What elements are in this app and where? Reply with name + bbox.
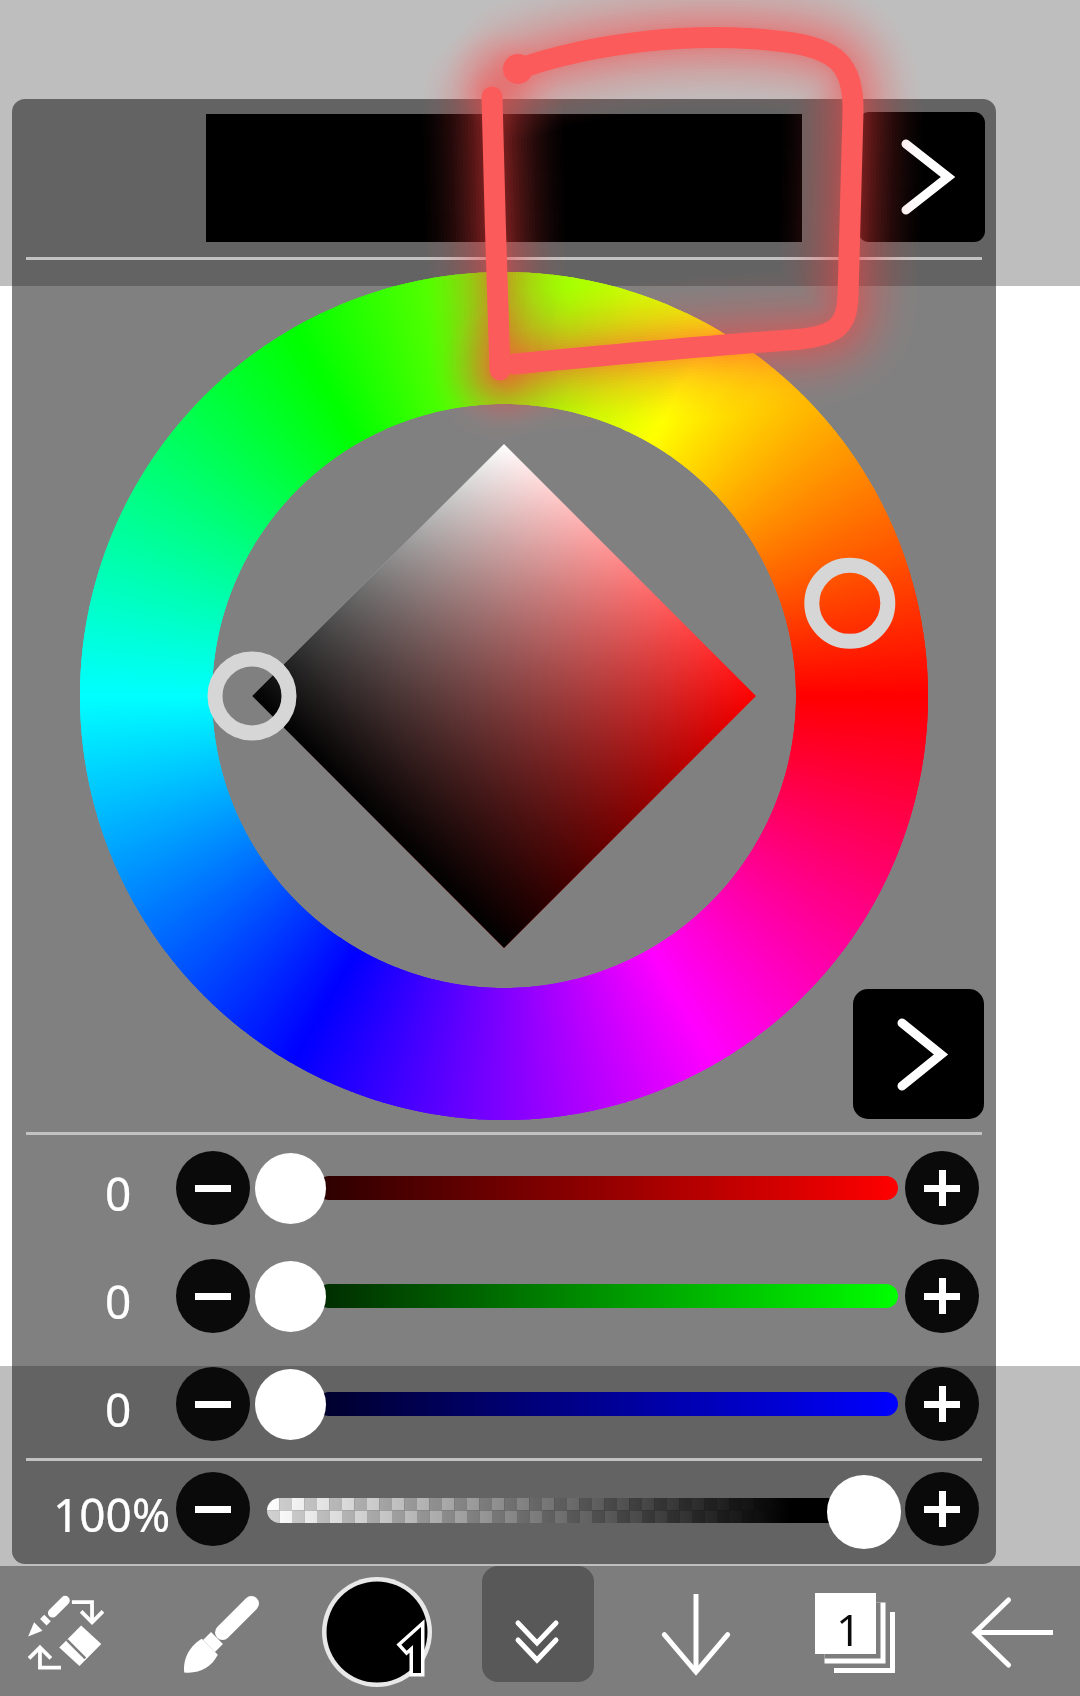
button[interactable]: Decrease — [176, 1259, 250, 1333]
button[interactable]: Decrease — [176, 1151, 250, 1225]
staticText: 0 — [105, 1162, 132, 1225]
button[interactable]: Next — [858, 112, 985, 242]
button[interactable]: Layers — [815, 1593, 895, 1674]
button[interactable]: Current colour — [206, 114, 802, 242]
staticText: 100% — [53, 1483, 171, 1546]
button[interactable]: Decrease opacity — [176, 1472, 250, 1546]
button[interactable]: Slider handle — [255, 1261, 326, 1332]
button[interactable]: Increase — [905, 1259, 979, 1333]
staticText: 0 — [105, 1378, 132, 1441]
button[interactable]: Collapse panel — [482, 1566, 594, 1682]
button[interactable]: Download — [663, 1594, 729, 1672]
button[interactable]: Colour — [322, 1577, 432, 1687]
button[interactable]: Slider handle — [255, 1369, 326, 1440]
button[interactable]: Slider handle — [255, 1153, 326, 1224]
staticText: 1 — [836, 1599, 862, 1659]
button[interactable]: Switch tool — [24, 1592, 108, 1676]
staticText: 0 — [105, 1270, 132, 1333]
button[interactable]: Opacity handle — [827, 1475, 901, 1549]
button[interactable]: Increase — [905, 1367, 979, 1441]
button[interactable]: Brush — [181, 1594, 261, 1674]
button[interactable]: Increase opacity — [905, 1472, 979, 1546]
button[interactable]: Decrease — [176, 1367, 250, 1441]
button[interactable]: Increase — [905, 1151, 979, 1225]
button[interactable]: Next palette — [853, 989, 984, 1119]
button[interactable]: Back — [975, 1600, 1053, 1665]
